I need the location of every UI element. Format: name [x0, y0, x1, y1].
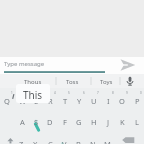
staticText: U	[91, 96, 97, 106]
button[interactable]: This	[16, 84, 50, 103]
button[interactable]: C	[43, 136, 57, 144]
staticText: T	[63, 96, 68, 106]
staticText: F	[63, 117, 67, 127]
staticText: Toys	[100, 78, 113, 86]
button[interactable]: Y	[72, 93, 86, 109]
staticText: D	[47, 117, 53, 127]
button[interactable]: J	[101, 114, 115, 130]
staticText: Q	[4, 96, 10, 106]
staticText: P	[135, 96, 140, 106]
staticText: S	[34, 117, 39, 127]
staticText: This	[23, 88, 43, 102]
staticText: 2	[25, 91, 27, 95]
staticText: 1	[11, 91, 13, 95]
staticText: 0	[140, 91, 142, 95]
button[interactable]: N	[86, 136, 100, 144]
staticText: K	[120, 117, 125, 127]
staticText: 3	[40, 91, 42, 95]
button[interactable]: K	[115, 114, 129, 130]
staticText: 9	[126, 91, 128, 95]
button[interactable]: U	[87, 93, 101, 109]
staticText: E	[34, 96, 39, 106]
button[interactable]: Toss	[57, 74, 87, 90]
button[interactable]: G	[72, 114, 86, 130]
button[interactable]: P	[130, 93, 144, 109]
button[interactable]: V	[57, 136, 71, 144]
button[interactable]: B	[71, 136, 85, 144]
staticText: J	[107, 117, 110, 127]
staticText: A	[20, 117, 25, 127]
staticText: I	[107, 96, 110, 106]
button[interactable]: T	[58, 93, 72, 109]
staticText: Y	[77, 96, 82, 106]
button[interactable]: A	[15, 114, 29, 130]
staticText: R	[48, 96, 53, 106]
button[interactable]: Thous	[13, 74, 53, 90]
button[interactable]: I	[101, 93, 115, 109]
staticText: 4	[54, 91, 56, 95]
staticText: C	[48, 139, 53, 144]
button[interactable]: Q	[0, 93, 14, 109]
button[interactable]: S	[29, 114, 43, 130]
button[interactable]: L	[130, 114, 144, 130]
button[interactable]: M	[100, 136, 114, 144]
staticText: M	[104, 139, 111, 144]
staticText: X	[33, 139, 38, 144]
button[interactable]: R	[43, 93, 57, 109]
staticText: 8	[112, 91, 114, 95]
button[interactable]: D	[43, 114, 57, 130]
button[interactable]: W	[15, 93, 29, 109]
button[interactable]: X	[28, 136, 42, 144]
button[interactable]: Type message	[4, 58, 84, 70]
button[interactable]: Toys	[93, 74, 119, 90]
staticText: O	[119, 96, 125, 106]
staticText: G	[76, 117, 82, 127]
staticText: 7	[97, 91, 99, 95]
button[interactable]: O	[115, 93, 129, 109]
button[interactable]: E	[29, 93, 43, 109]
staticText: L	[135, 117, 139, 127]
button[interactable]: H	[87, 114, 101, 130]
staticText: Z	[19, 139, 24, 144]
staticText: Type message	[4, 60, 45, 68]
staticText: Thous	[24, 78, 42, 86]
button[interactable]: Z	[14, 136, 28, 144]
staticText: N	[90, 139, 96, 144]
staticText: W	[19, 96, 26, 106]
staticText: B	[76, 139, 81, 144]
staticText: 6	[83, 91, 85, 95]
staticText: V	[62, 139, 67, 144]
button[interactable]: F	[58, 114, 72, 130]
staticText: H	[91, 117, 97, 127]
staticText: 5	[68, 91, 70, 95]
staticText: Toss	[66, 78, 79, 86]
